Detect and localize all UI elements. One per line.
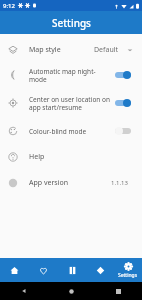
button[interactable]: Explore (86, 258, 114, 282)
staticText: App version (29, 178, 69, 188)
button[interactable]: Help (0, 144, 142, 170)
button[interactable]: Automatic map night-mode (0, 62, 142, 88)
staticText: Settings (118, 272, 138, 279)
button[interactable]: Map style (0, 38, 142, 62)
staticText: 9:12 (3, 2, 15, 10)
button[interactable]: Center on user location on app start/res… (0, 88, 142, 118)
button[interactable]: Center on user location (114, 97, 132, 109)
button[interactable]: Automatic map night-mode (114, 69, 132, 81)
staticText: Colour-blind mode (29, 127, 110, 136)
button[interactable]: Colour-blind mode (0, 118, 142, 144)
button[interactable]: Home (0, 258, 29, 282)
button[interactable]: Colour-blind mode (114, 125, 132, 137)
staticText: Settings (52, 16, 91, 30)
staticText: Center on user location on app start/res… (29, 95, 110, 112)
button[interactable]: Settings (114, 258, 142, 282)
staticText: Automatic map night-mode (29, 67, 110, 84)
button[interactable]: Guide (58, 258, 86, 282)
button[interactable]: Favourites (29, 258, 58, 282)
staticText: Map style (29, 45, 61, 55)
staticText: 1.1.13 (111, 179, 128, 187)
button[interactable]: App version (0, 170, 142, 196)
staticText: Default (94, 45, 119, 55)
staticText: Help (29, 152, 45, 162)
